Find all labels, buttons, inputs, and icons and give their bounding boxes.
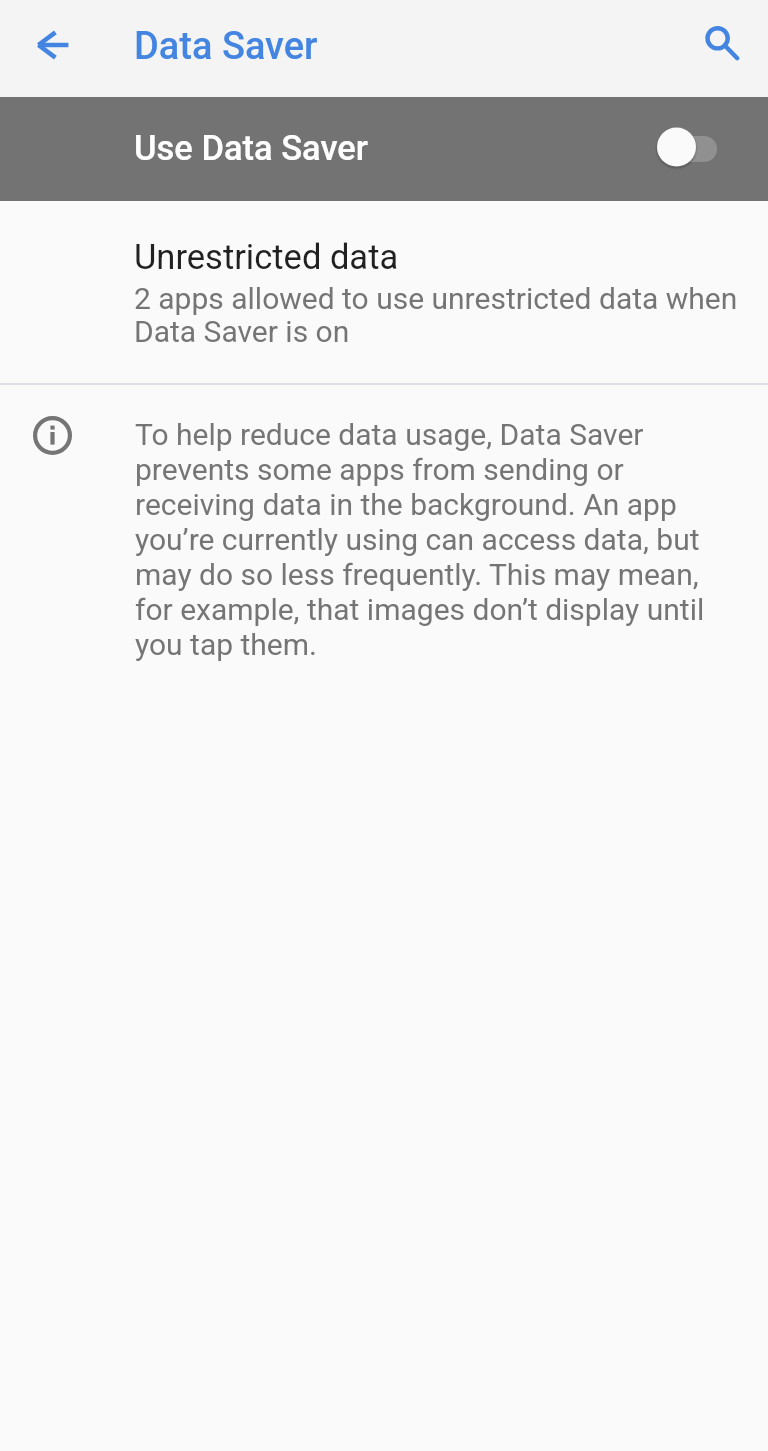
- staticText: Data Saver: [134, 24, 318, 69]
- staticText: Unrestricted data: [134, 237, 399, 277]
- staticText: To help reduce data usage, Data Saver pr…: [135, 417, 715, 662]
- button[interactable]: Search: [682, 3, 762, 83]
- button[interactable]: Use Data Saver: [0, 97, 768, 201]
- button[interactable]: Navigate up: [9, 1, 97, 89]
- staticText: 2 apps allowed to use unrestricted data …: [134, 281, 754, 349]
- staticText: Use Data Saver: [134, 128, 368, 168]
- button[interactable]: Use Data Saver toggle, off: [653, 126, 717, 172]
- button[interactable]: Unrestricted data: [0, 201, 768, 383]
